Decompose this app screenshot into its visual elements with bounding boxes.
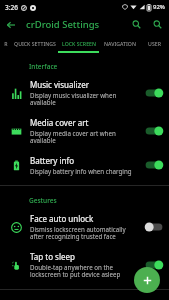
staticText: crDroid Settings <box>26 18 100 31</box>
button[interactable]: Search <box>126 14 147 35</box>
button[interactable]: On <box>144 124 164 138</box>
staticText: Interface <box>29 62 58 71</box>
staticText: Gestures <box>29 196 57 205</box>
button[interactable]: Media cover art <box>0 112 169 150</box>
staticText: R <box>4 40 8 47</box>
button[interactable]: Tap to sleep <box>0 246 169 284</box>
staticText: USER <box>148 40 161 47</box>
button[interactable]: Off <box>144 220 164 234</box>
staticText: Dismiss lockscreen automatically after r… <box>30 225 140 241</box>
button[interactable]: NAVIGATION <box>99 35 140 51</box>
staticText: 92% <box>153 3 165 11</box>
staticText: Battery info <box>30 155 75 166</box>
staticText: Face auto unlock <box>30 213 94 224</box>
button[interactable]: USER <box>140 35 169 51</box>
staticText: Display battery info when charging <box>30 167 132 175</box>
button[interactable]: Battery info <box>0 150 169 180</box>
button[interactable]: Music visualizer <box>0 74 169 112</box>
staticText: Double-tap anywhere on the lockscreen to… <box>30 263 140 279</box>
button[interactable]: Back <box>0 14 21 35</box>
button[interactable]: Add <box>134 267 160 293</box>
staticText: QUICK SETTINGS <box>14 40 56 47</box>
button[interactable]: QUICK SETTINGS <box>11 35 58 51</box>
staticText: LOCK SCREEN <box>62 40 96 47</box>
button[interactable]: On <box>144 158 164 172</box>
staticText: Display media cover art when available <box>30 129 140 145</box>
button[interactable]: On <box>144 258 164 272</box>
button[interactable]: R <box>0 35 11 51</box>
staticText: 3:26 <box>5 3 18 12</box>
button[interactable]: Face auto unlock <box>0 208 169 246</box>
staticText: Display music visualizer when available <box>30 91 140 107</box>
staticText: Music visualizer <box>30 79 90 90</box>
button[interactable]: On <box>144 86 164 100</box>
staticText: NAVIGATION <box>104 40 136 47</box>
button[interactable]: Search settings <box>147 14 168 35</box>
button[interactable]: LOCK SCREEN <box>58 35 99 51</box>
staticText: Media cover art <box>30 117 89 128</box>
staticText: Tap to sleep <box>30 251 75 262</box>
